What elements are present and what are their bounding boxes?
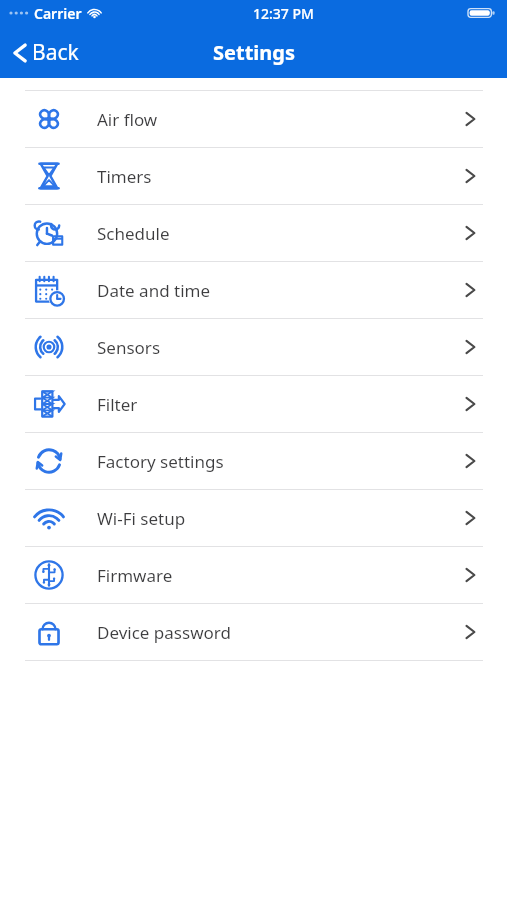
button[interactable]: Timers	[0, 148, 507, 205]
staticText: Sensors	[97, 336, 161, 359]
button[interactable]: Air flow	[0, 91, 507, 148]
staticText: Filter	[97, 393, 138, 416]
staticText: Air flow	[97, 108, 158, 131]
button[interactable]: Firmware	[0, 547, 507, 604]
staticText: Factory settings	[97, 450, 224, 473]
staticText: Timers	[97, 165, 152, 188]
button[interactable]: Sensors	[0, 319, 507, 376]
button[interactable]: Wi-Fi setup	[0, 490, 507, 547]
button[interactable]: Filter	[0, 376, 507, 433]
staticText: Carrier	[34, 4, 82, 23]
staticText: Settings	[213, 39, 295, 66]
staticText: Back	[32, 38, 79, 67]
button[interactable]: Date and time	[0, 262, 507, 319]
staticText: Device password	[97, 621, 231, 644]
staticText: Firmware	[97, 564, 173, 587]
button[interactable]: Back	[0, 30, 93, 75]
staticText: Wi-Fi setup	[97, 507, 186, 530]
staticText: Date and time	[97, 279, 211, 302]
button[interactable]: Device password	[0, 604, 507, 661]
staticText: Schedule	[97, 222, 170, 245]
button[interactable]: Schedule	[0, 205, 507, 262]
staticText: 12:37 PM	[253, 4, 314, 23]
button[interactable]: Factory settings	[0, 433, 507, 490]
